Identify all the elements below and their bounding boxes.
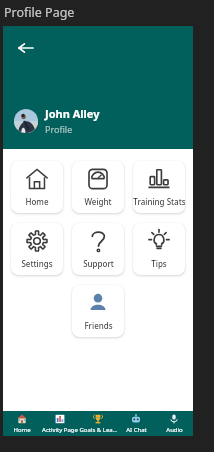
staticText: Activity Page [42,426,78,434]
staticText: Profile Page [4,4,75,21]
staticText: Training Stats [133,196,185,207]
staticText: Friends [84,320,113,331]
staticText: AI Chat [126,426,147,434]
button[interactable]: Friends [72,285,124,337]
button[interactable]: Home [11,161,63,213]
staticText: Weight [84,196,112,207]
button[interactable]: AI Chat [117,411,155,436]
staticText: Audio [166,426,183,434]
staticText: Home [13,426,31,434]
button[interactable]: Goals & Lea... [79,411,117,436]
button[interactable]: Support [72,223,124,275]
button[interactable]: Tips [133,223,185,275]
button[interactable]: Activity Page [41,411,79,436]
button[interactable]: Back [8,30,43,65]
button[interactable]: Home [3,411,41,436]
staticText: John Alley [45,106,100,121]
staticText: Home [25,196,49,207]
button[interactable]: Weight [72,161,124,213]
button[interactable]: Training Stats [133,161,185,213]
button[interactable]: Settings [11,223,63,275]
staticText: Tips [151,258,167,269]
staticText: Profile [45,123,73,135]
button[interactable]: John Alley [14,106,100,135]
staticText: Settings [21,258,53,269]
staticText: Support [83,258,114,269]
staticText: Goals & Lea... [79,426,117,434]
button[interactable]: Audio [155,411,193,436]
